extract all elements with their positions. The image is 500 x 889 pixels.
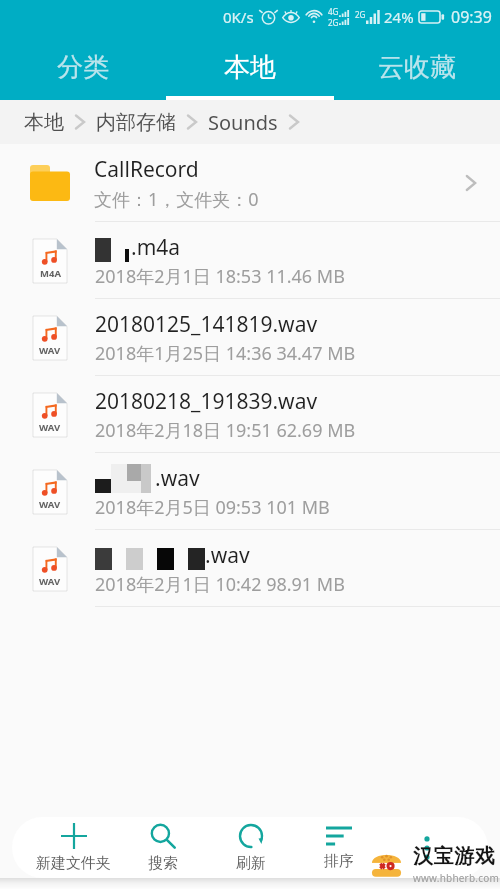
button[interactable]: WAV	[0, 299, 500, 376]
staticText: 云收藏	[378, 51, 456, 84]
staticText: 2018年2月1日 10:42 98.91 MB	[95, 572, 345, 597]
staticText: 2018年2月5日 09:53 101 MB	[95, 495, 330, 520]
staticText: WAV	[39, 344, 61, 357]
staticText: 分类	[57, 51, 109, 84]
staticText: www.hbherb.com	[413, 871, 499, 885]
staticText: 内部存储	[96, 110, 176, 135]
button[interactable]: 内部存储	[96, 110, 176, 135]
staticText: 2018年1月25日 14:36 34.47 MB	[95, 341, 356, 366]
staticText: 本地	[24, 110, 64, 135]
staticText: 2G	[328, 17, 339, 28]
button[interactable]: 搜索	[118, 817, 207, 878]
button[interactable]: 本地	[166, 34, 333, 100]
staticText: Sounds	[208, 109, 278, 136]
staticText: 24%	[384, 7, 414, 27]
staticText: WAV	[39, 575, 61, 588]
staticText: .wav	[205, 541, 250, 570]
button[interactable]: WAV	[0, 453, 500, 530]
button[interactable]: CallRecord	[0, 144, 500, 222]
staticText: 本地	[224, 51, 276, 84]
staticText: 2018年2月18日 19:51 62.69 MB	[95, 418, 356, 443]
staticText: 新建文件夹	[36, 854, 111, 873]
staticText: .wav	[155, 464, 200, 493]
staticText: M4A	[40, 267, 61, 280]
staticText: CallRecord	[94, 155, 199, 184]
staticText: 文件：1，文件夹：0	[94, 187, 259, 212]
button[interactable]: WAV	[0, 376, 500, 453]
button[interactable]: More options	[383, 817, 471, 878]
staticText: 搜索	[148, 854, 178, 873]
button[interactable]: Sounds	[208, 109, 278, 136]
staticText: 0K/s	[223, 7, 254, 27]
staticText: 09:39	[451, 6, 492, 28]
staticText: 汉宝游戏	[413, 844, 496, 869]
button[interactable]: 本地	[24, 110, 64, 135]
staticText: 2G	[355, 9, 366, 20]
button[interactable]: 排序	[295, 817, 383, 878]
staticText: 2018年2月1日 18:53 11.46 MB	[95, 264, 345, 289]
staticText: 刷新	[236, 854, 266, 873]
staticText: 4G	[328, 6, 339, 17]
button[interactable]: 分类	[0, 34, 166, 100]
staticText: 排序	[324, 852, 354, 871]
staticText: 20180125_141819.wav	[95, 310, 318, 339]
staticText: WAV	[39, 421, 61, 434]
button[interactable]: WAV	[0, 530, 500, 607]
button[interactable]: M4A	[0, 222, 500, 299]
staticText: .m4a	[131, 233, 181, 262]
staticText: 20180218_191839.wav	[95, 387, 318, 416]
staticText: WAV	[39, 498, 61, 511]
button[interactable]: 新建文件夹	[29, 817, 118, 878]
button[interactable]: 云收藏	[333, 34, 500, 100]
button[interactable]: 刷新	[207, 817, 295, 878]
